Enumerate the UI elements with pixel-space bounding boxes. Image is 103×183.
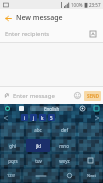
staticText: SEND [87,93,99,99]
button[interactable] [1,123,24,137]
staticText: 123! [7,173,15,178]
staticText: Enter recipients [5,30,86,38]
button[interactable]: j [30,114,37,121]
staticText: def [61,127,68,133]
button[interactable]: Next [91,113,103,122]
staticText: ghi [9,143,16,149]
staticText: k [41,115,44,121]
button[interactable]: tuv [26,154,50,167]
button[interactable] [78,139,102,152]
button[interactable]: k [39,114,46,121]
staticText: tuv [35,158,42,164]
button[interactable] [78,123,102,137]
staticText: Enter message [13,92,71,100]
button[interactable]: def [52,123,76,137]
staticText: New message [16,13,63,23]
staticText: mno [59,143,69,149]
staticText: j [33,115,35,121]
button[interactable]: pqrs [1,154,24,167]
button[interactable]: 123! [1,169,21,182]
staticText: 23:57 [89,2,101,8]
button[interactable]: Back [0,10,16,26]
staticText: abc [34,127,42,133]
staticText: 5 [50,115,53,121]
button[interactable]: Emoji [60,169,79,182]
button[interactable]: jkl [26,139,50,152]
button[interactable]: Enter recipients [0,26,103,42]
button[interactable]: i [21,114,28,121]
staticText: pqrs [8,158,18,164]
button[interactable]: Sticker [14,104,28,113]
staticText: Next [87,173,96,178]
button[interactable]: 5 [48,114,55,121]
button[interactable]: Emoji [71,89,84,102]
staticText: English [44,106,60,111]
button[interactable]: English [30,106,73,111]
button[interactable]: Add recipient from contacts [86,27,100,41]
button[interactable]: Previous [0,113,12,122]
button[interactable]: wxyz [52,154,76,167]
button[interactable]: Attach [0,89,13,102]
button[interactable]: mno [52,139,76,152]
staticText: 100% [71,2,83,8]
staticText: i [24,115,26,121]
button[interactable]: ghi [1,139,24,152]
staticText: wxyz [59,158,70,164]
button[interactable]: Backspace [78,154,102,167]
button[interactable]: Settings [75,104,89,113]
button[interactable]: abc [26,123,50,137]
staticText: jkl [36,143,41,149]
button[interactable]: Space [23,169,58,182]
button[interactable]: Next [81,169,102,182]
button[interactable]: Keyboard mode [89,104,103,113]
button[interactable]: Theme [0,104,14,113]
button[interactable]: SEND [84,91,101,101]
